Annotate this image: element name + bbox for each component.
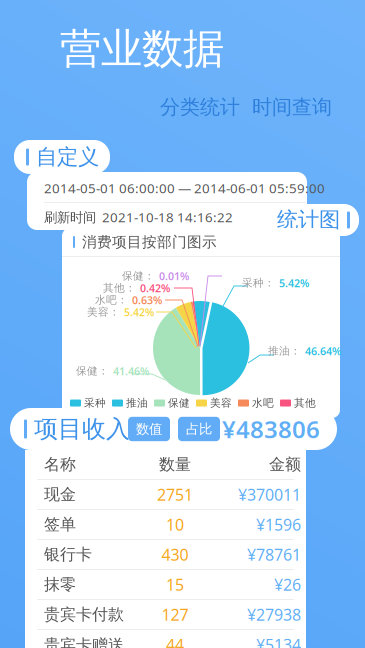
staticText: 15 (166, 574, 184, 595)
staticText: 水吧 (252, 396, 274, 409)
staticText: 其他： (103, 281, 136, 294)
staticText: ¥1596 (256, 514, 301, 535)
staticText: 46.64% (305, 344, 341, 358)
staticText: 保健 (168, 396, 190, 409)
staticText: 10 (166, 514, 184, 535)
button[interactable]: 占比 (178, 417, 220, 441)
staticText: 项目收入 (34, 414, 130, 444)
staticText: 0.63% (132, 293, 162, 307)
staticText: 保健： (76, 364, 109, 377)
staticText: 营业数据 (60, 24, 224, 74)
staticText: 采种： (242, 276, 275, 289)
staticText: 水吧： (95, 293, 128, 306)
staticText: 占比 (186, 421, 212, 437)
staticText: 0.42% (140, 281, 170, 295)
staticText: 刷新时间 2021-10-18 14:16:22 (44, 208, 233, 226)
staticText: 41.46% (113, 364, 149, 378)
button[interactable]: 数值 (128, 417, 170, 441)
staticText: 抹零 (44, 575, 76, 594)
staticText: 5.42% (279, 276, 309, 290)
staticText: 消费项目按部门图示 (82, 233, 217, 251)
staticText: 银行卡 (44, 545, 92, 564)
staticText: 美容： (87, 305, 120, 318)
staticText: 金额 (269, 455, 301, 474)
staticText: 贵宾卡付款 (44, 605, 124, 624)
staticText: 2014-05-01 06:00:00 — 2014-06-01 05:59:0… (44, 179, 325, 197)
staticText: 采种 (84, 396, 106, 409)
staticText: 2751 (157, 484, 193, 505)
staticText: 44 (166, 634, 184, 648)
staticText: 127 (161, 604, 188, 625)
staticText: 自定义 (36, 144, 99, 170)
staticText: 贵宾卡赠送... (44, 634, 136, 648)
staticText: 推油： (268, 344, 301, 357)
staticText: ¥27938 (247, 604, 301, 625)
staticText: ¥370011 (238, 484, 301, 505)
staticText: 其他 (294, 396, 316, 409)
staticText: 5.42% (124, 305, 154, 319)
staticText: ¥78761 (247, 544, 301, 565)
staticText: ¥483806 (222, 413, 320, 445)
staticText: 数值 (136, 421, 162, 437)
staticText: 0.01% (159, 269, 189, 283)
staticText: 430 (161, 544, 188, 565)
staticText: 现金 (44, 485, 76, 504)
staticText: 签单 (44, 515, 76, 534)
staticText: 推油 (126, 396, 148, 409)
staticText: 保健： (122, 269, 155, 282)
staticText: ¥26 (274, 574, 301, 595)
staticText: 美容 (210, 396, 232, 409)
staticText: 名称 (44, 455, 76, 474)
staticText: 统计图 (277, 207, 340, 233)
staticText: 分类统计 时间查询 (160, 95, 332, 119)
staticText: 数量 (159, 455, 191, 474)
staticText: ¥5134 (256, 634, 301, 648)
